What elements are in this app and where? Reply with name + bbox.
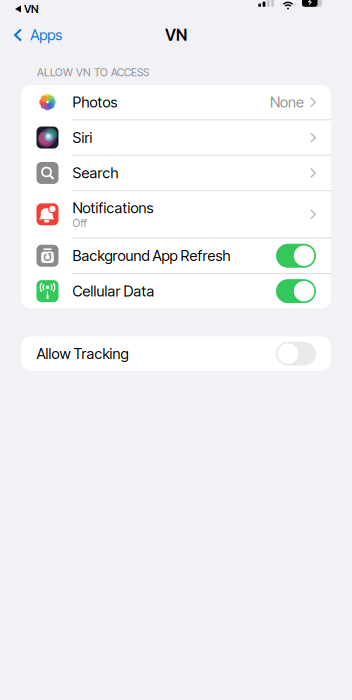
staticText: Photos bbox=[72, 93, 117, 111]
staticText: Notifications bbox=[72, 199, 153, 217]
staticText: Background App Refresh bbox=[72, 247, 230, 265]
staticText: Apps bbox=[30, 26, 62, 44]
staticText: None bbox=[270, 93, 304, 111]
staticText: ALLOW VN TO ACCESS bbox=[37, 66, 149, 79]
button[interactable]: Cellular Data bbox=[21, 274, 331, 308]
button[interactable]: Notifications bbox=[21, 191, 331, 238]
staticText: Off bbox=[72, 217, 86, 230]
button[interactable]: VN bbox=[0, 0, 39, 12]
button[interactable]: Photos bbox=[21, 85, 331, 119]
staticText: Siri bbox=[72, 129, 92, 146]
staticText: VN bbox=[165, 25, 187, 45]
button[interactable]: Apps bbox=[0, 26, 62, 44]
button[interactable]: Siri bbox=[21, 120, 331, 155]
button[interactable]: Allow Tracking bbox=[21, 336, 331, 371]
button[interactable]: Background App Refresh bbox=[21, 238, 331, 273]
staticText: Search bbox=[72, 164, 118, 182]
button[interactable]: Search bbox=[21, 156, 331, 190]
staticText: VN bbox=[24, 2, 39, 15]
staticText: Cellular Data bbox=[72, 282, 154, 300]
staticText: Allow Tracking bbox=[36, 345, 128, 362]
